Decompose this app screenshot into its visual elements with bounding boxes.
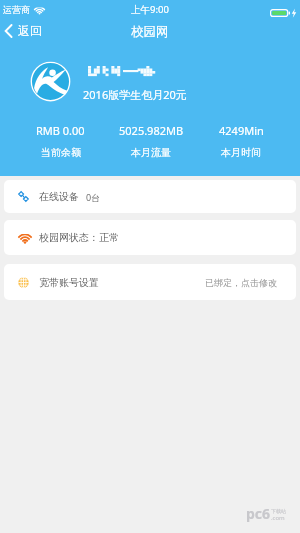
button[interactable]: 在线设备 (4, 180, 296, 213)
button[interactable]: 宽带账号设置 (4, 264, 296, 300)
staticText: 校园网状态：正常 (39, 231, 119, 244)
staticText: pc6 (246, 504, 271, 523)
staticText: 运营商 (3, 4, 30, 15)
staticText: 4249Min (219, 123, 264, 138)
staticText: .com (271, 514, 285, 522)
staticText: 本月时间 (221, 146, 261, 159)
staticText: 2016版学生包月20元 (83, 87, 187, 102)
staticText: 在线设备 (39, 190, 79, 203)
staticText: 0台 (86, 191, 101, 203)
staticText: 5025.982MB (119, 123, 184, 138)
staticText: 已绑定，点击修改 (205, 277, 277, 288)
staticText: 返回 (18, 23, 42, 38)
staticText: 宽带账号设置 (39, 276, 99, 289)
staticText: 校园网 (131, 24, 169, 40)
staticText: 本月流量 (131, 146, 171, 159)
staticText: 下载站 (271, 508, 286, 514)
button[interactable]: 返回 (0, 20, 52, 41)
button[interactable]: 校园网状态：正常 (4, 220, 296, 255)
staticText: 当前余额 (41, 146, 81, 159)
staticText: 上午9:00 (131, 3, 169, 16)
staticText: RMB 0.00 (36, 123, 85, 138)
